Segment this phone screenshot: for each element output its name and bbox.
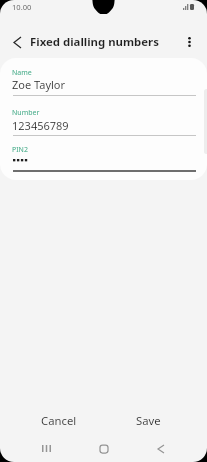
staticText: PIN2 (12, 145, 28, 155)
button[interactable]: Recent apps (32, 434, 61, 462)
staticText: Number (12, 108, 40, 118)
staticText: Name (12, 68, 32, 78)
staticText: Zoe Taylor (12, 77, 66, 92)
button[interactable]: Cancel (29, 407, 89, 433)
button[interactable]: Save (124, 407, 172, 433)
staticText: Cancel (41, 413, 77, 428)
staticText: Fixed dialling numbers (30, 34, 159, 50)
button[interactable]: Back (146, 434, 175, 462)
staticText: 123456789 (12, 118, 69, 133)
button[interactable]: Home (89, 434, 118, 462)
staticText: Save (136, 413, 161, 428)
staticText: 10.00 (12, 2, 32, 12)
button[interactable]: Navigate up (4, 29, 31, 56)
button[interactable]: More options (176, 28, 203, 55)
